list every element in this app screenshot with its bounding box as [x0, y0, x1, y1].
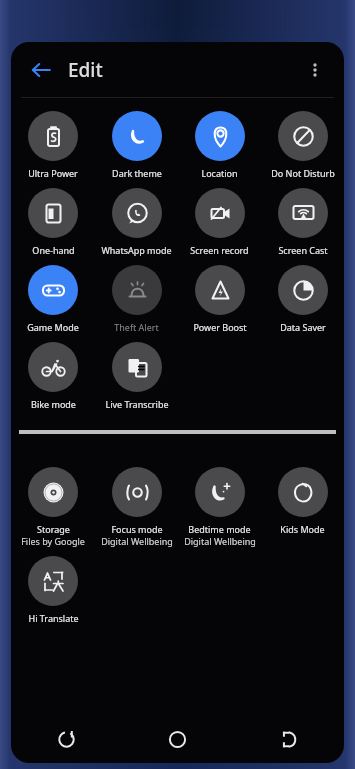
staticText: Screen Cast [278, 244, 328, 256]
button[interactable]: Ultra Power [11, 105, 95, 182]
staticText: Dark theme [112, 167, 162, 179]
button[interactable]: Kids Mode [261, 461, 344, 538]
staticText: Live Transcribe [105, 398, 169, 410]
staticText: Bedtime mode [188, 523, 251, 535]
button[interactable]: Hi Translate [11, 550, 95, 627]
button[interactable]: Back [19, 48, 63, 92]
staticText: Hi Translate [28, 612, 79, 624]
staticText: Screen record [190, 244, 249, 256]
button[interactable]: Live Transcribe [95, 336, 178, 413]
button[interactable]: Screen record [178, 182, 261, 259]
button[interactable]: Game Mode [11, 259, 95, 336]
staticText: Data Saver [280, 321, 326, 333]
button[interactable]: Storage [11, 461, 95, 550]
button[interactable]: Bedtime mode [178, 461, 261, 550]
button[interactable]: Dark theme [95, 105, 178, 182]
button[interactable]: Location [178, 105, 261, 182]
staticText: Ultra Power [28, 167, 78, 179]
button[interactable]: Back [233, 715, 344, 763]
button[interactable]: Power Boost [178, 259, 261, 336]
staticText: Storage [37, 523, 70, 535]
staticText: Power Boost [193, 321, 247, 333]
button[interactable]: One-hand [11, 182, 95, 259]
staticText: WhatsApp mode [101, 244, 172, 256]
button[interactable]: Focus mode [95, 461, 178, 550]
button[interactable]: Theft Alert [95, 259, 178, 336]
staticText: Edit [68, 57, 103, 83]
staticText: Focus mode [111, 523, 163, 535]
staticText: Do Not Disturb [271, 167, 335, 179]
button[interactable]: Recents [11, 715, 122, 763]
button[interactable]: Screen Cast [261, 182, 344, 259]
staticText: Bike mode [31, 398, 76, 410]
staticText: Digital Wellbeing [184, 535, 256, 547]
staticText: Location [201, 167, 238, 179]
staticText: One-hand [32, 244, 75, 256]
button[interactable]: Do Not Disturb [261, 105, 344, 182]
button[interactable]: WhatsApp mode [95, 182, 178, 259]
button[interactable]: Data Saver [261, 259, 344, 336]
button[interactable]: More options [294, 49, 336, 91]
staticText: Files by Google [21, 535, 85, 547]
staticText: Kids Mode [280, 523, 325, 535]
button[interactable]: Bike mode [11, 336, 95, 413]
staticText: Theft Alert [114, 321, 159, 333]
button[interactable]: Home [122, 715, 233, 763]
staticText: Game Mode [27, 321, 79, 333]
staticText: Digital Wellbeing [101, 535, 173, 547]
